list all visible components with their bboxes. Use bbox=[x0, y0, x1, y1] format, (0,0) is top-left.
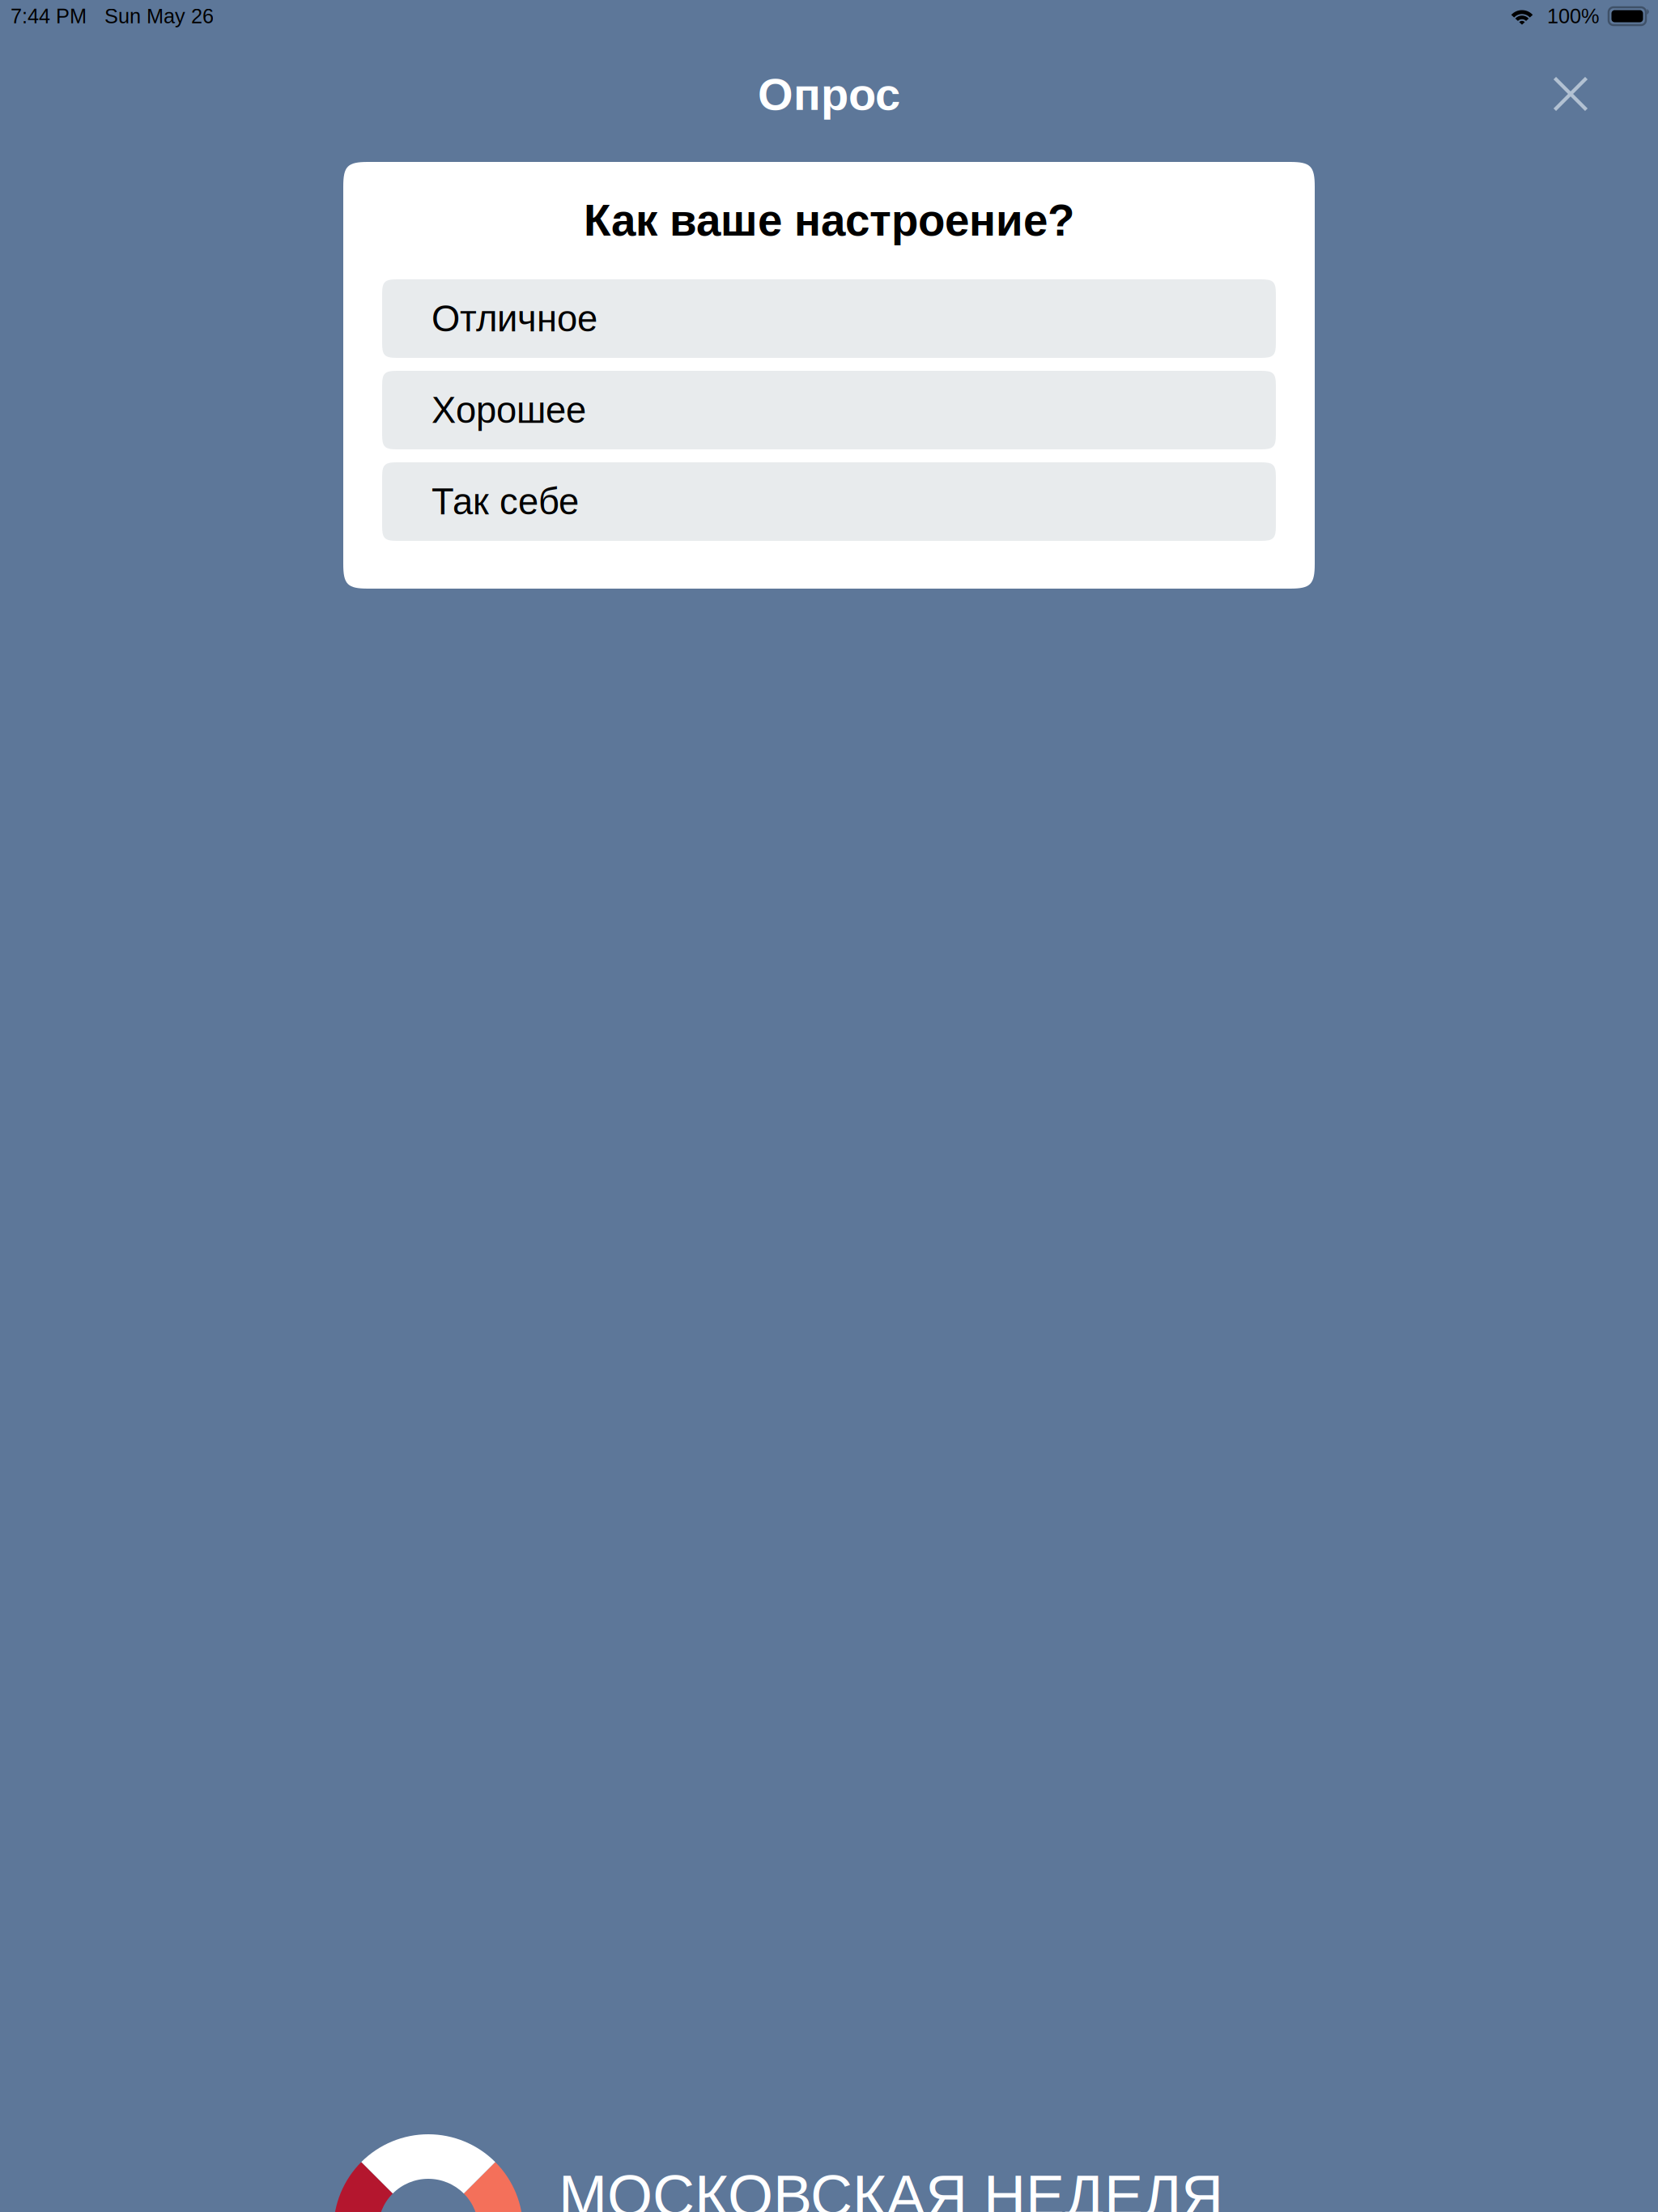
button[interactable]: Так себе bbox=[382, 462, 1276, 541]
button[interactable]: Отличное bbox=[382, 279, 1276, 358]
staticText: Так себе bbox=[432, 481, 579, 522]
button[interactable]: Хорошее bbox=[382, 371, 1276, 449]
staticText: 7:44 PM bbox=[11, 5, 87, 28]
staticText: 100% bbox=[1547, 5, 1600, 28]
staticText: Sun May 26 bbox=[104, 5, 214, 28]
staticText: Хорошее bbox=[432, 390, 586, 431]
staticText: Отличное bbox=[432, 298, 597, 339]
staticText: Опрос bbox=[758, 69, 900, 120]
button[interactable]: Close bbox=[1516, 39, 1658, 126]
staticText: МОСКОВСКАЯ НЕДЕЛЯ bbox=[559, 2163, 1223, 2212]
staticText: Как ваше настроение? bbox=[584, 196, 1074, 245]
